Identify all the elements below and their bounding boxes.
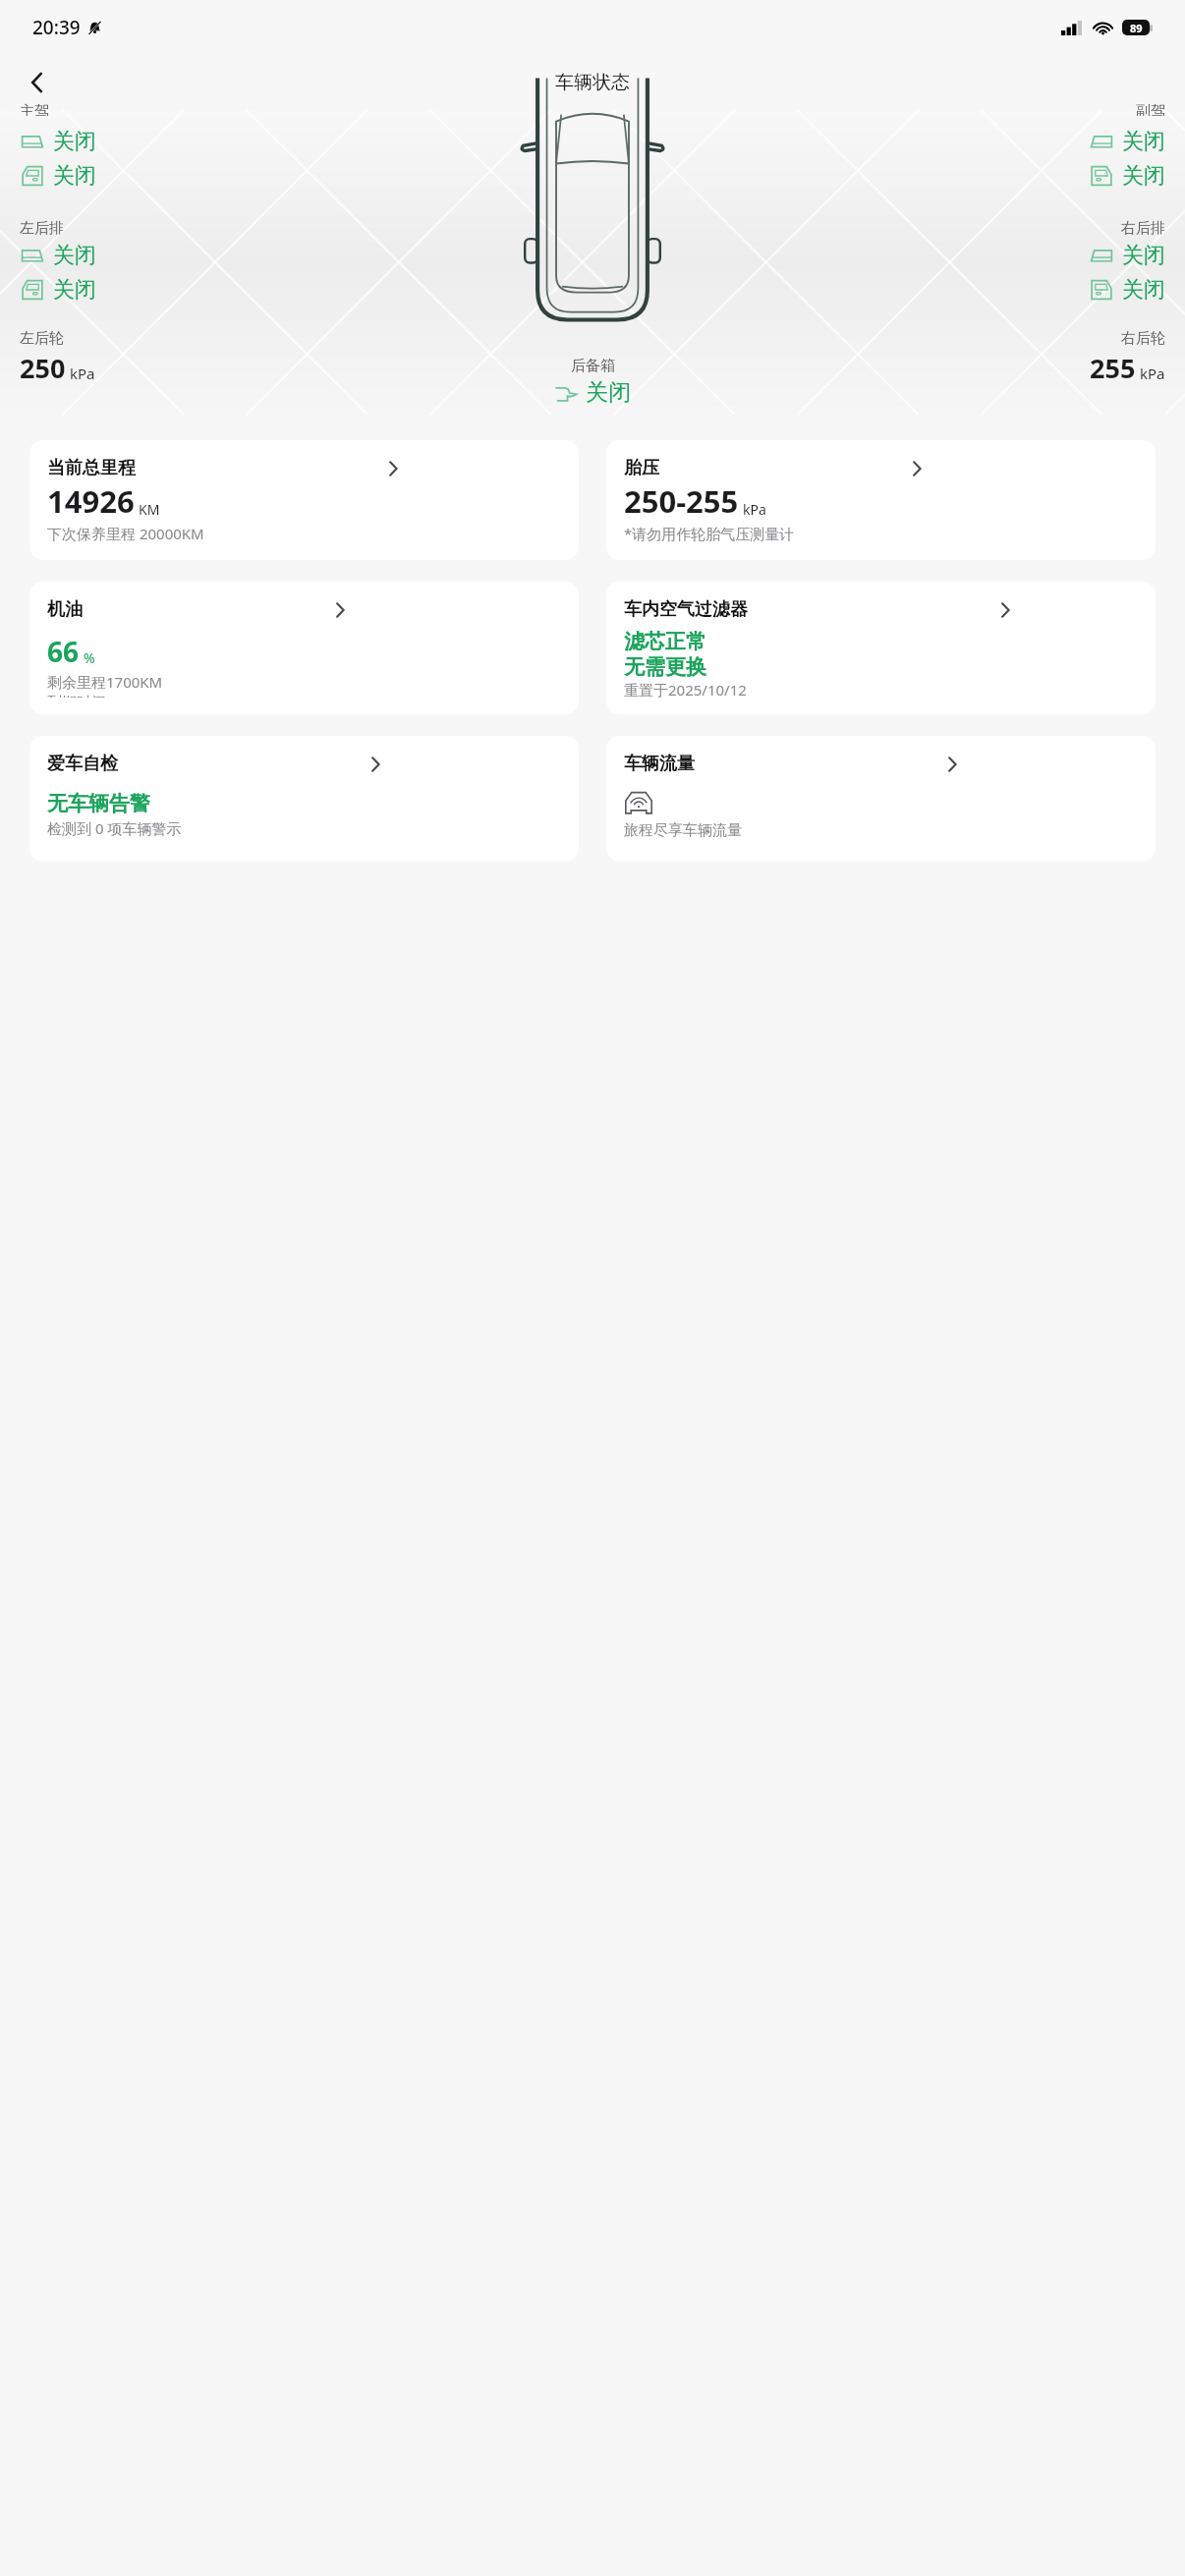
staticText: kPa <box>70 364 95 383</box>
staticText: 255 <box>1090 350 1136 386</box>
button[interactable]: 关闭 <box>20 276 96 304</box>
button[interactable]: 爱车自检 <box>29 736 579 862</box>
staticText: 右后排 <box>1121 219 1165 238</box>
staticText: 剩余里程1700KM <box>47 672 163 692</box>
staticText: 下次保养里程 20000KM <box>47 524 204 543</box>
staticText: 250 <box>20 350 66 386</box>
button[interactable]: 关闭 <box>20 242 96 269</box>
staticText: 主驾 <box>20 102 49 116</box>
staticText: 66 <box>47 633 80 670</box>
staticText: 旅程尽享车辆流量 <box>624 821 742 840</box>
staticText: 关闭 <box>586 378 631 407</box>
staticText: 关闭 <box>53 276 96 304</box>
staticText: 关闭 <box>53 162 96 190</box>
button[interactable]: 关闭 <box>1089 128 1165 155</box>
staticText: 车内空气过滤器 <box>624 598 748 621</box>
staticText: 检测到 0 项车辆警示 <box>47 818 182 838</box>
button[interactable]: 关闭 <box>1089 162 1165 190</box>
staticText: kPa <box>743 500 766 519</box>
button[interactable]: 关闭 <box>20 162 96 190</box>
staticText: 关闭 <box>1122 162 1165 190</box>
staticText: 胎压 <box>624 457 659 479</box>
staticText: 89 <box>1130 21 1143 35</box>
staticText: 车辆状态 <box>555 71 630 94</box>
button[interactable]: 车辆流量 <box>606 736 1156 862</box>
button[interactable]: 关闭 <box>554 378 631 407</box>
staticText: 左后轮 <box>20 329 64 348</box>
staticText: 当前总里程 <box>47 457 136 479</box>
button[interactable]: 返回 <box>14 59 61 106</box>
staticText: 无车辆告警 <box>47 791 150 816</box>
staticText: 左后排 <box>20 219 64 238</box>
button[interactable]: 关闭 <box>1089 242 1165 269</box>
staticText: % <box>84 648 95 667</box>
staticText: 后备箱 <box>571 357 615 375</box>
staticText: kPa <box>1140 364 1165 383</box>
button[interactable]: 关闭 <box>1089 276 1165 304</box>
button[interactable]: 胎压 <box>606 440 1156 560</box>
staticText: 关闭 <box>1122 242 1165 269</box>
staticText: 关闭 <box>53 242 96 269</box>
staticText: 车辆流量 <box>624 753 695 775</box>
staticText: 到期时间2026/10 <box>47 692 163 698</box>
staticText: 关闭 <box>1122 276 1165 304</box>
staticText: 副驾 <box>1136 102 1165 116</box>
staticText: 250-255 <box>624 480 739 522</box>
staticText: 重置于2025/10/12 <box>624 680 747 698</box>
staticText: *请勿用作轮胎气压测量计 <box>624 524 795 543</box>
staticText: KM <box>139 500 160 519</box>
button[interactable]: 车内空气过滤器 <box>606 582 1156 714</box>
staticText: 关闭 <box>1122 128 1165 155</box>
staticText: 机油 <box>47 598 83 621</box>
button[interactable]: 当前总里程 <box>29 440 579 560</box>
staticText: 右后轮 <box>1121 329 1165 348</box>
button[interactable]: 机油 <box>29 582 579 714</box>
staticText: 关闭 <box>53 128 96 155</box>
staticText: 无需更换 <box>624 654 706 680</box>
staticText: 爱车自检 <box>47 753 118 775</box>
button[interactable]: 关闭 <box>20 128 96 155</box>
staticText: 滤芯正常 <box>624 629 706 654</box>
staticText: 20:39 <box>32 15 81 40</box>
staticText: 14926 <box>47 480 135 522</box>
